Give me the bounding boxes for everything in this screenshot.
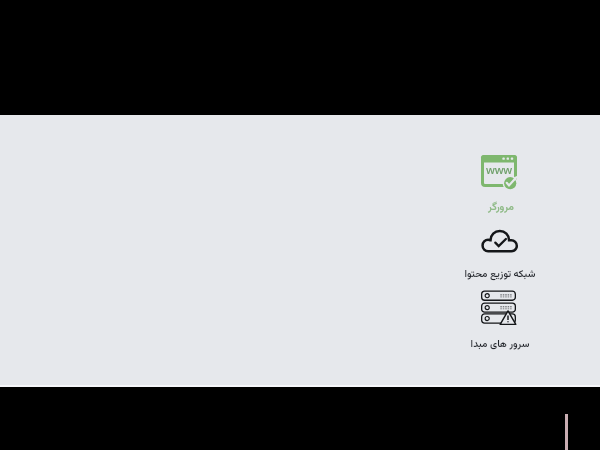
staticText: سرور های مبدا bbox=[440, 337, 560, 353]
button[interactable]: www bbox=[440, 151, 560, 215]
staticText: مرورگر bbox=[441, 199, 561, 215]
staticText: www bbox=[482, 162, 516, 177]
button[interactable]: سرور های مبدا bbox=[440, 286, 560, 352]
button[interactable]: شبکه توزیع محتوا bbox=[440, 225, 560, 285]
staticText: شبکه توزیع محتوا bbox=[440, 267, 560, 283]
